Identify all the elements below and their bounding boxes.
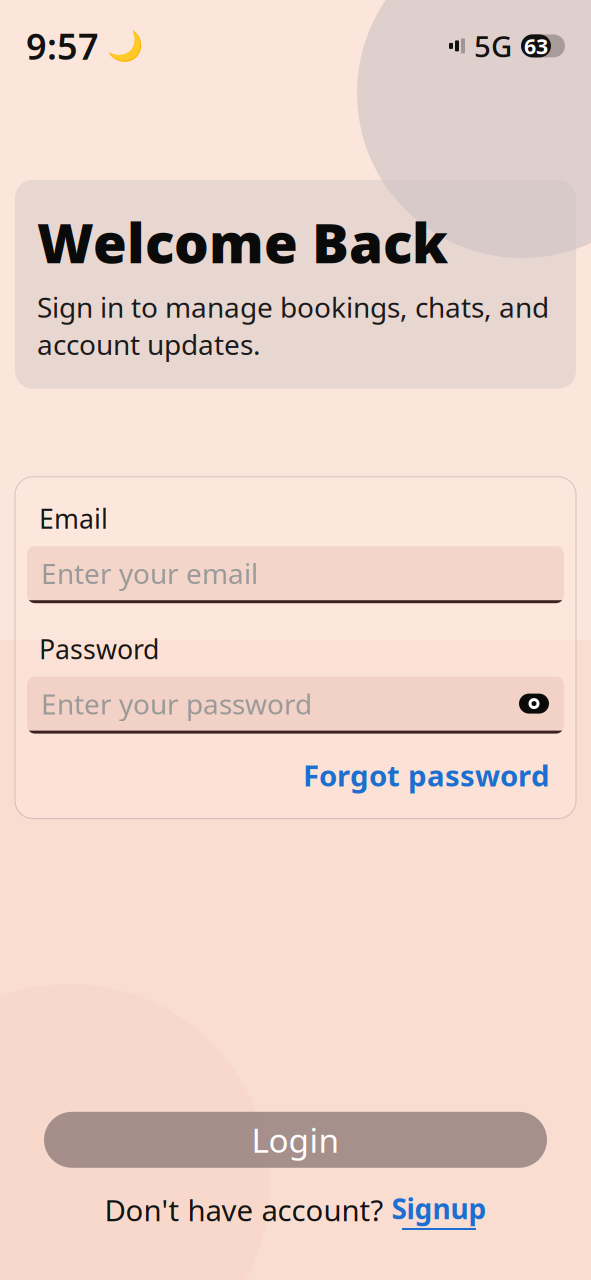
staticText: 9:57 xyxy=(26,22,99,70)
staticText: Signup xyxy=(391,1190,486,1227)
staticText: Enter your password xyxy=(41,685,312,722)
staticText: 5G xyxy=(474,26,512,65)
staticText: Email xyxy=(39,501,108,536)
staticText: Login xyxy=(251,1118,339,1162)
button[interactable]: Enter your email xyxy=(27,546,564,600)
button[interactable]: Signup xyxy=(391,1190,486,1230)
staticText: 🌙 xyxy=(107,29,144,63)
staticText: Enter your email xyxy=(41,555,258,592)
staticText: Welcome Back xyxy=(37,206,448,278)
staticText: Sign in to manage bookings, chats, and a… xyxy=(37,288,549,363)
staticText: Don't have account? xyxy=(104,1190,383,1229)
staticText: 63 xyxy=(524,32,548,60)
button[interactable]: Enter your password xyxy=(27,677,564,731)
staticText: Password xyxy=(39,631,159,667)
button[interactable]: Login xyxy=(44,1112,547,1168)
button[interactable]: Forgot password xyxy=(301,752,552,799)
staticText: Forgot password xyxy=(303,756,550,795)
